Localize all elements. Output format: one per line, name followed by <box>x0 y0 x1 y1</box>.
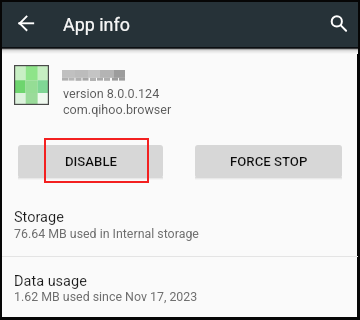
button[interactable]: DISABLE <box>18 145 163 178</box>
staticText: com.qihoo.browser <box>63 102 172 117</box>
staticText: 76.64 MB used in Internal storage <box>14 226 199 241</box>
staticText: version 8.0.0.124 <box>63 86 160 101</box>
staticText: Storage <box>14 209 64 226</box>
staticText: App info <box>63 14 130 35</box>
staticText: 1.62 MB used since Nov 17, 2023 <box>14 289 198 304</box>
button[interactable]: Storage <box>2 196 358 256</box>
button[interactable]: FORCE STOP <box>195 145 342 178</box>
button[interactable]: Back <box>12 10 40 38</box>
staticText: FORCE STOP <box>230 154 308 169</box>
button[interactable]: Data usage <box>2 260 358 317</box>
staticText: DISABLE <box>65 154 117 169</box>
staticText: Data usage <box>14 273 87 290</box>
button[interactable]: Search <box>325 10 353 38</box>
